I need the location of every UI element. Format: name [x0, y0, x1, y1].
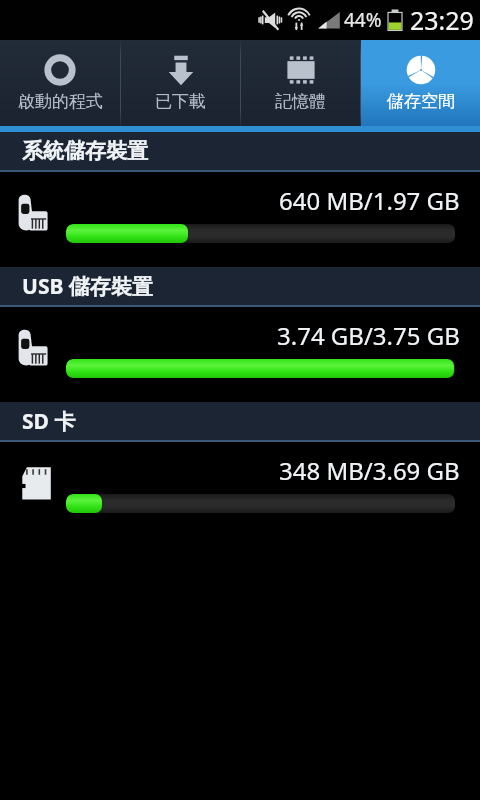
button[interactable]: Device storage — [0, 307, 480, 402]
staticText: 啟動的程式 — [18, 91, 103, 112]
staticText: USB 儲存裝置 — [22, 272, 153, 301]
staticText: 348 MB/3.69 GB — [279, 454, 460, 487]
staticText: 3.74 GB/3.75 GB — [277, 319, 460, 352]
button[interactable]: SD card — [0, 442, 480, 537]
staticText: 已下載 — [155, 91, 206, 112]
button[interactable]: 已下載 — [121, 40, 240, 126]
other: Device storage — [14, 325, 60, 371]
staticText: SD 卡 — [22, 407, 76, 436]
staticText: 44% — [344, 7, 382, 33]
button[interactable]: 啟動的程式 — [0, 40, 120, 126]
button[interactable]: 儲存空間 — [361, 40, 480, 126]
button[interactable]: 記憶體 — [241, 40, 360, 126]
button[interactable]: Device storage — [0, 172, 480, 267]
other: Device storage — [14, 190, 60, 236]
other: SD card — [14, 460, 60, 506]
staticText: 640 MB/1.97 GB — [279, 184, 460, 217]
staticText: 記憶體 — [275, 91, 326, 112]
staticText: 儲存空間 — [387, 91, 455, 112]
staticText: 系統儲存裝置 — [22, 138, 148, 164]
staticText: 23:29 — [410, 3, 474, 37]
